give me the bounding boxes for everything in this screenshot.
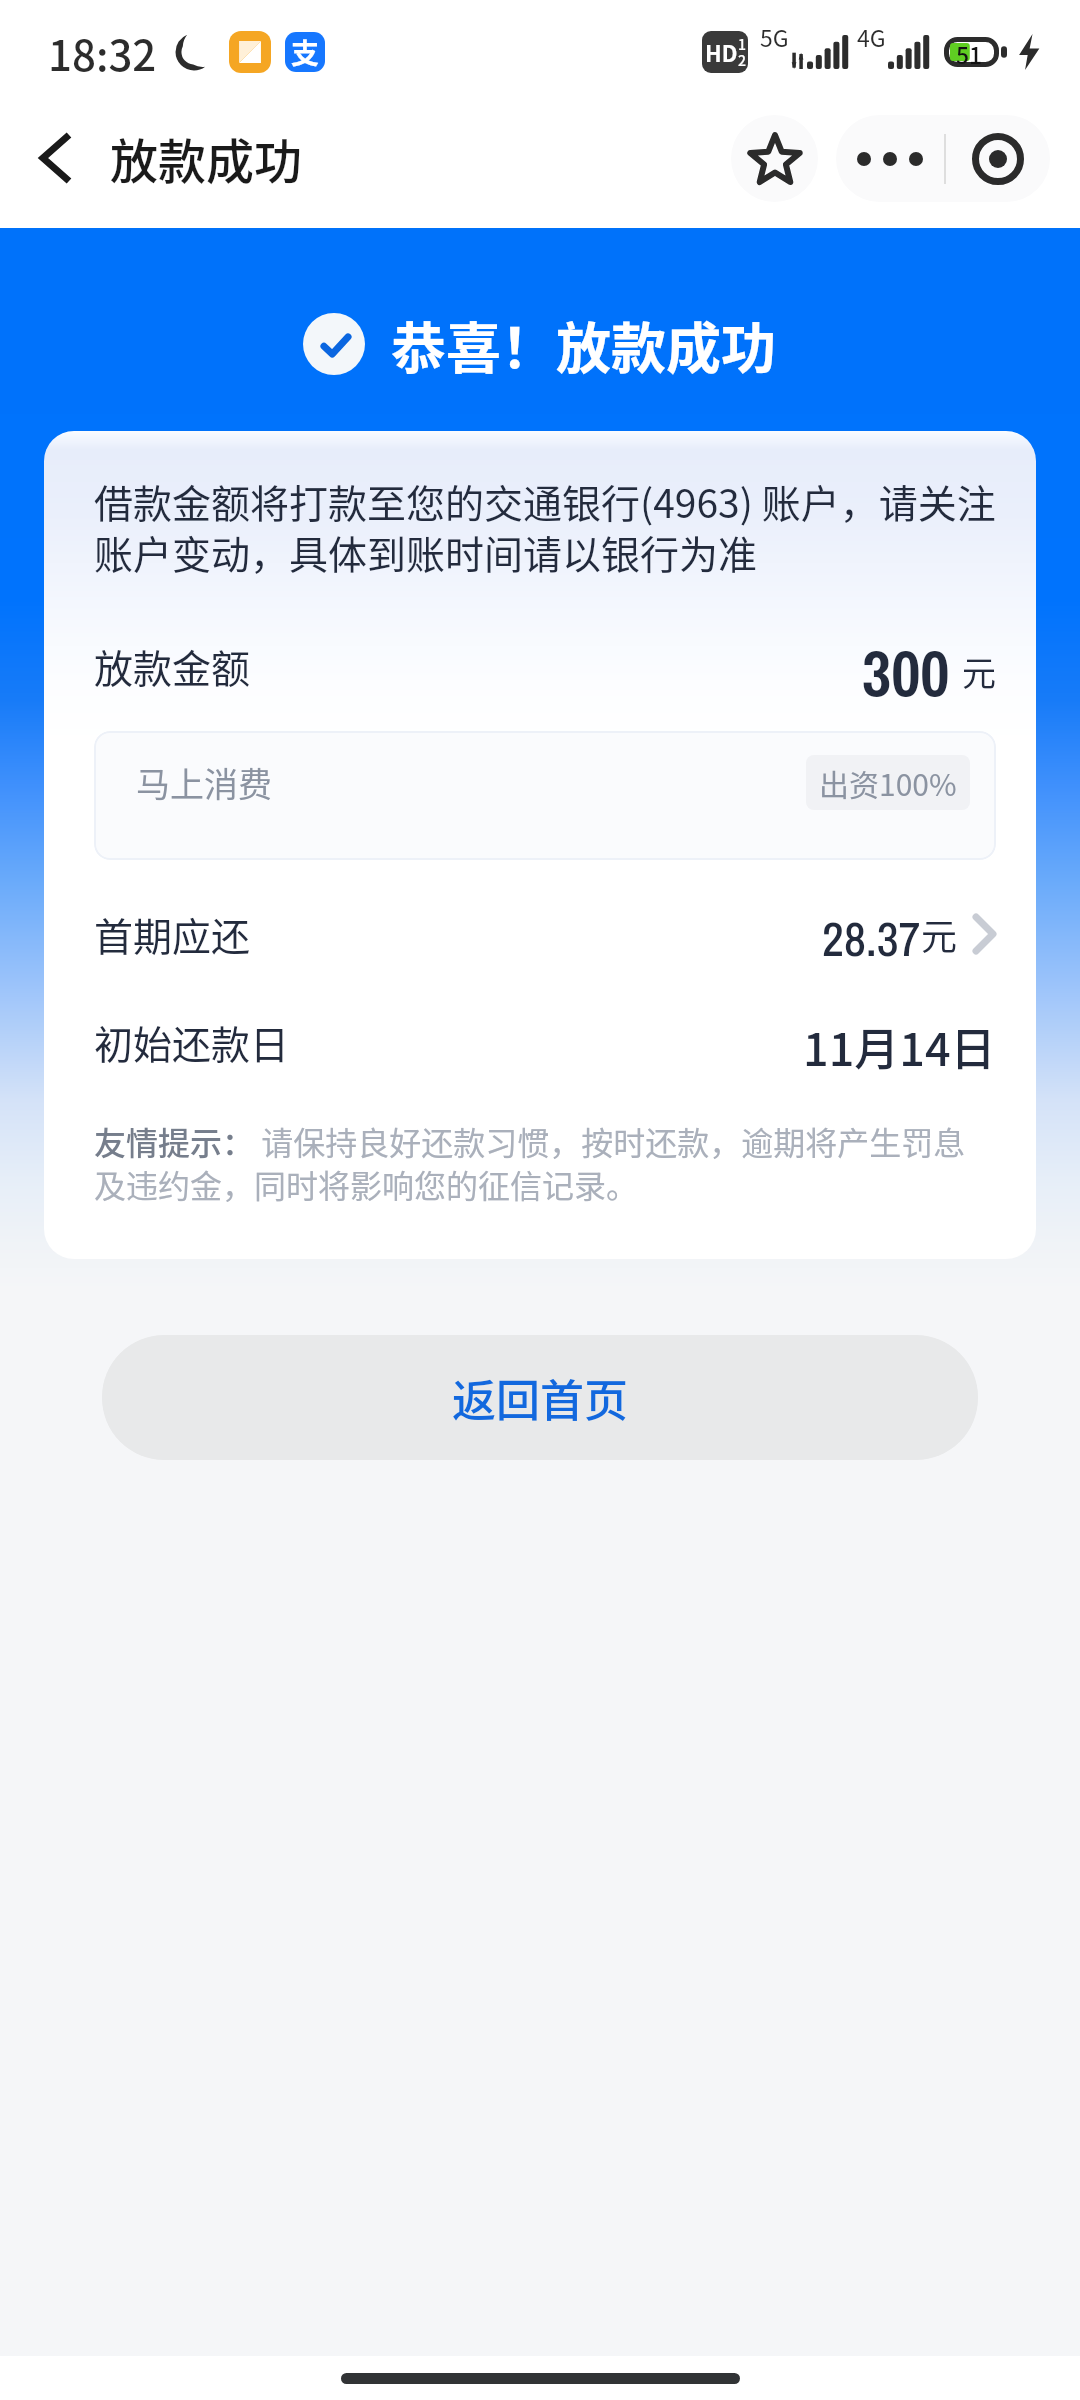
button[interactable]: 返回首页	[102, 1335, 978, 1460]
staticText: 出资100%	[819, 761, 957, 804]
staticText: 友情提示： 请保持良好还款习惯，按时还款，逾期将产生罚息及违约金，同时将影响您的…	[94, 1118, 996, 1208]
staticText: 马上消费	[136, 758, 272, 807]
staticText: 1	[738, 34, 746, 54]
staticText: 放款成功	[110, 123, 303, 193]
staticText: 4G	[857, 20, 886, 53]
staticText: 51	[956, 37, 983, 67]
staticText: HD	[705, 36, 738, 68]
staticText: 支	[291, 32, 320, 72]
staticText: 借款金额将打款至您的交通银行(4963) 账户，请关注账户变动，具体到账时间请以…	[94, 473, 996, 580]
staticText: 返回首页	[452, 1366, 628, 1430]
staticText: 放款金额	[94, 638, 251, 694]
button[interactable]: More options	[836, 115, 944, 202]
button[interactable]: Close	[946, 115, 1050, 202]
staticText: 28.37	[822, 906, 921, 962]
button[interactable]: Back	[20, 122, 92, 194]
staticText: 11月14日	[803, 1014, 996, 1070]
button[interactable]: Favorite	[731, 115, 818, 202]
staticText: 18:32	[48, 22, 157, 83]
staticText: 元	[962, 647, 996, 696]
button[interactable]: 首期应还	[94, 906, 996, 962]
staticText: 300	[862, 630, 950, 702]
staticText: 初始还款日	[94, 1014, 290, 1070]
staticText: 首期应还	[94, 906, 251, 962]
staticText: 恭喜！放款成功	[391, 304, 777, 384]
staticText: 元	[921, 908, 958, 960]
staticText: 5G	[760, 20, 789, 53]
staticText: 2	[738, 50, 746, 70]
